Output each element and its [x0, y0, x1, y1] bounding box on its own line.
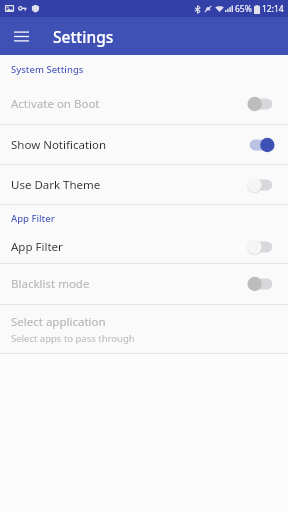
button[interactable]: Use Dark Theme	[0, 165, 288, 204]
staticText: 65%	[235, 3, 252, 15]
button[interactable]: Activate on Boot	[0, 83, 288, 124]
staticText: Show Notification	[11, 137, 246, 153]
staticText: App Filter	[11, 212, 55, 225]
staticText: Select apps to pass through	[11, 332, 135, 345]
button[interactable]: Show Notification	[0, 125, 288, 164]
staticText: Use Dark Theme	[11, 177, 246, 193]
staticText: Select application	[11, 314, 106, 330]
staticText: Activate on Boot	[11, 96, 246, 112]
staticText: System Settings	[11, 63, 84, 76]
staticText: App Filter	[11, 239, 246, 255]
staticText: Settings	[53, 26, 114, 47]
button[interactable]: Blacklist mode	[0, 264, 288, 304]
staticText: Blacklist mode	[11, 276, 246, 292]
button[interactable]: Open navigation menu	[7, 22, 35, 50]
staticText: 12:14	[262, 3, 284, 15]
button[interactable]: Select application	[0, 305, 288, 353]
button[interactable]: App Filter	[0, 231, 288, 263]
